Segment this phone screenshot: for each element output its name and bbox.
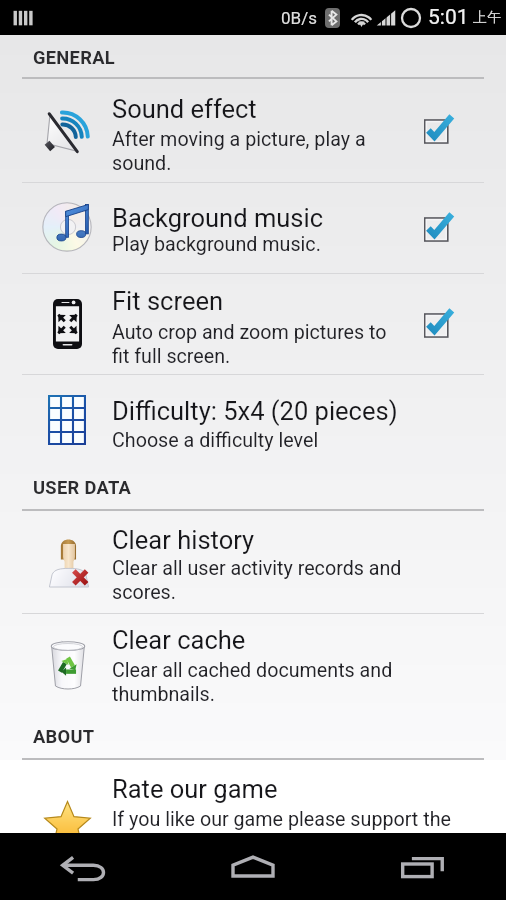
button[interactable]: Home <box>168 833 337 900</box>
staticText: 上午 <box>473 9 501 27</box>
staticText: 0B/s <box>281 8 317 28</box>
staticText: If you like our game please support the <box>112 808 451 831</box>
staticText: Rate our game <box>112 774 278 804</box>
staticText: Sound effect <box>112 94 257 124</box>
button[interactable]: Rate our game <box>0 760 506 833</box>
staticText: 5:01 <box>428 5 469 30</box>
staticText: Clear cache <box>112 625 246 655</box>
staticText: GENERAL <box>33 47 115 68</box>
staticText: ABOUT <box>33 726 95 747</box>
staticText: Fit screen <box>112 286 224 316</box>
staticText: Choose a difficulty level <box>112 429 319 452</box>
button[interactable]: Fit screen <box>0 274 506 374</box>
staticText: Auto crop and zoom pictures to fit full … <box>112 321 387 368</box>
button[interactable]: Recent apps <box>337 833 506 900</box>
staticText: USER DATA <box>33 477 132 498</box>
staticText: Difficulty: 5x4 (20 pieces) <box>112 396 398 426</box>
staticText: Play background music. <box>112 233 321 256</box>
button[interactable]: Sound effect <box>0 79 506 182</box>
staticText: Clear all user activity records and scor… <box>112 557 402 604</box>
button[interactable]: Difficulty: 5x4 (20 pieces) <box>0 375 506 437</box>
button[interactable]: Clear cache <box>0 614 506 702</box>
staticText: Background music <box>112 203 324 233</box>
button[interactable]: Clear history <box>0 511 506 613</box>
staticText: Clear history <box>112 525 255 555</box>
button[interactable]: Back <box>0 833 168 900</box>
button[interactable]: Background music <box>0 183 506 273</box>
staticText: After moving a picture, play a sound. <box>112 128 366 175</box>
staticText: Clear all cached documents and thumbnail… <box>112 659 393 706</box>
